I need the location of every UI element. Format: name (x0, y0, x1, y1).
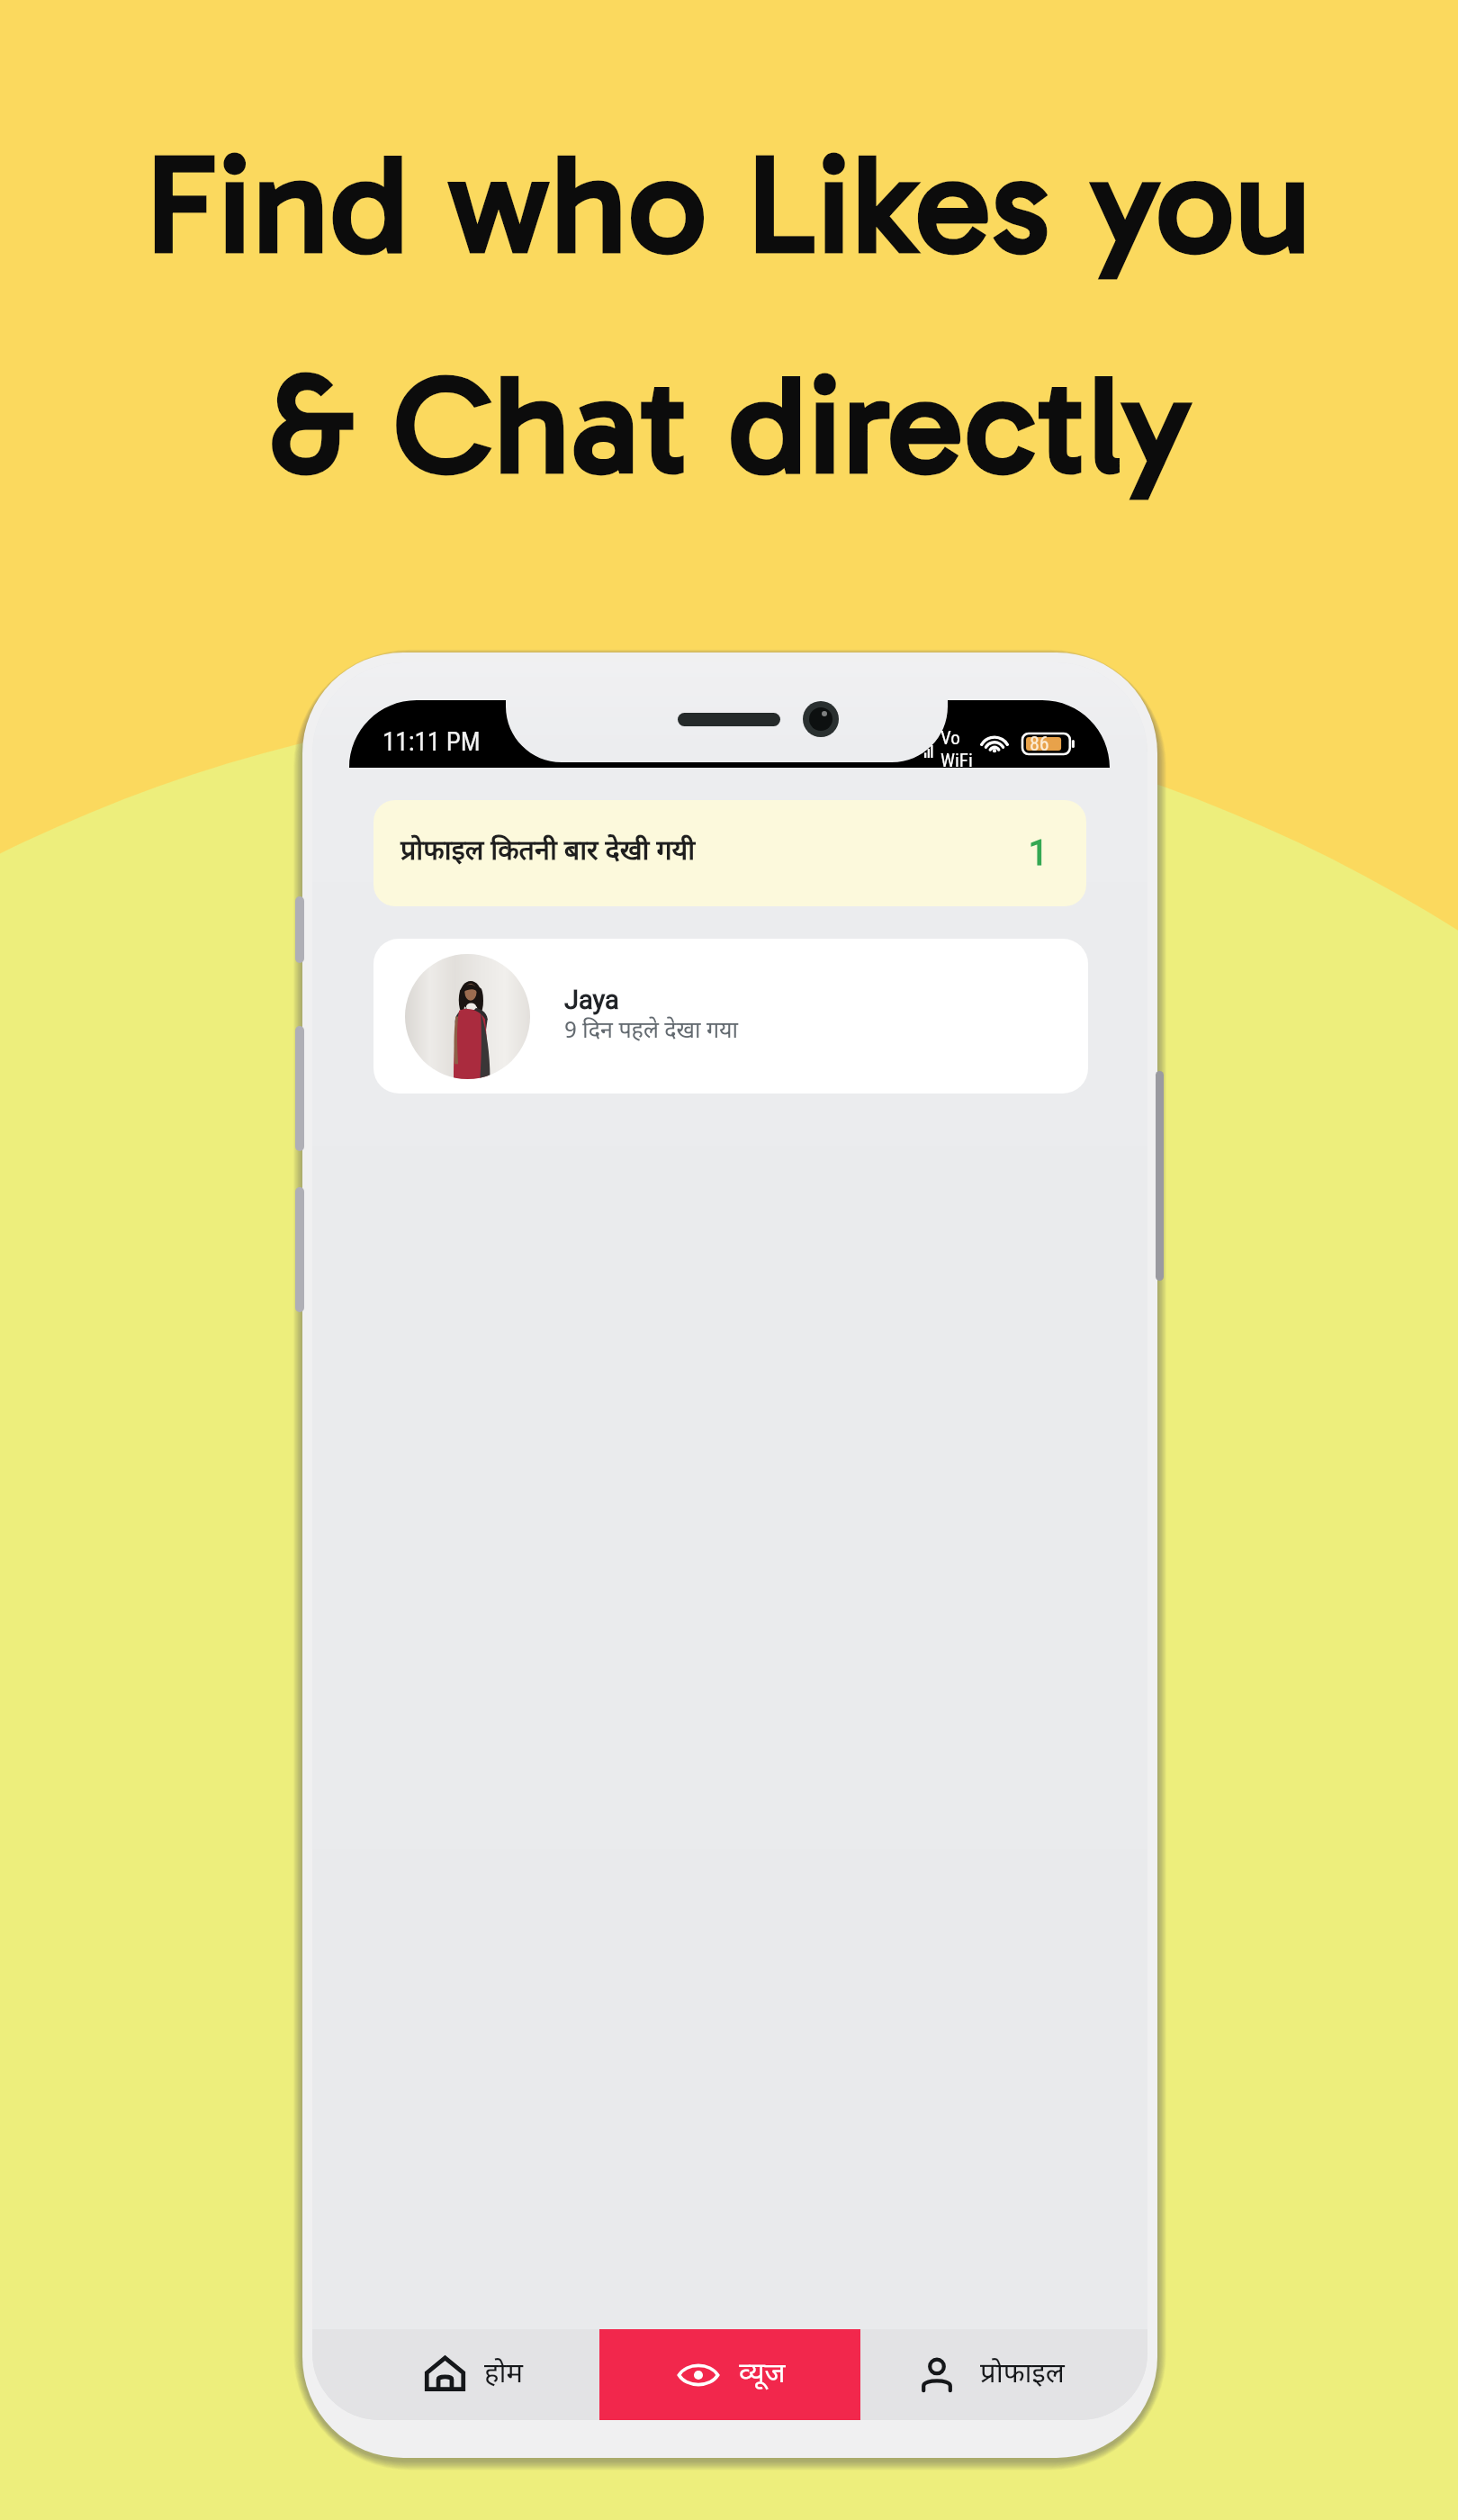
staticText: 9 दिन पहले देखा गया (564, 1018, 739, 1048)
staticText: 11:11 PM (382, 726, 481, 757)
staticText: होम (484, 2357, 524, 2393)
staticText: WiFi (940, 750, 973, 772)
staticText: 1 (1029, 833, 1048, 874)
staticText: Find who Likes you (0, 121, 1458, 287)
button[interactable]: Jaya (373, 939, 1088, 1093)
button[interactable]: प्रोफाइल कितनी बार देखी गयी (373, 800, 1086, 906)
staticText: 86 (1030, 733, 1049, 753)
staticText: Vo (940, 727, 960, 750)
staticText: प्रोफाइल कितनी बार देखी गयी (400, 835, 696, 871)
button[interactable]: Profile (860, 2329, 1147, 2420)
staticText: & Chat directly (0, 342, 1458, 508)
staticText: प्रोफाइल (980, 2357, 1065, 2393)
staticText: Jaya (564, 985, 619, 1015)
button[interactable]: Home (312, 2329, 599, 2420)
staticText: व्यूज (739, 2357, 786, 2393)
button[interactable]: Views (599, 2329, 860, 2420)
